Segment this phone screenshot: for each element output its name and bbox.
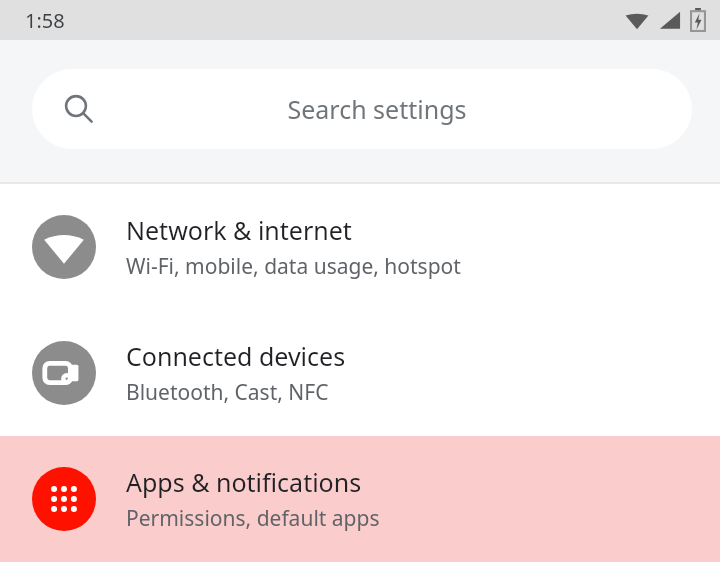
staticText: Permissions, default apps <box>126 504 380 533</box>
staticText: Apps & notifications <box>126 465 362 499</box>
button[interactable]: Apps & notifications <box>0 436 720 562</box>
other: Search <box>64 94 94 124</box>
staticText: Network & internet <box>126 213 352 247</box>
staticText: Bluetooth, Cast, NFC <box>126 378 329 407</box>
staticText: Connected devices <box>126 339 346 373</box>
staticText: 1:58 <box>25 7 65 34</box>
button[interactable]: Search <box>32 69 692 149</box>
button[interactable]: Network & internet <box>0 184 720 310</box>
button[interactable]: Connected devices <box>0 310 720 436</box>
staticText: Search settings <box>78 92 676 126</box>
staticText: Wi-Fi, mobile, data usage, hotspot <box>126 252 461 281</box>
